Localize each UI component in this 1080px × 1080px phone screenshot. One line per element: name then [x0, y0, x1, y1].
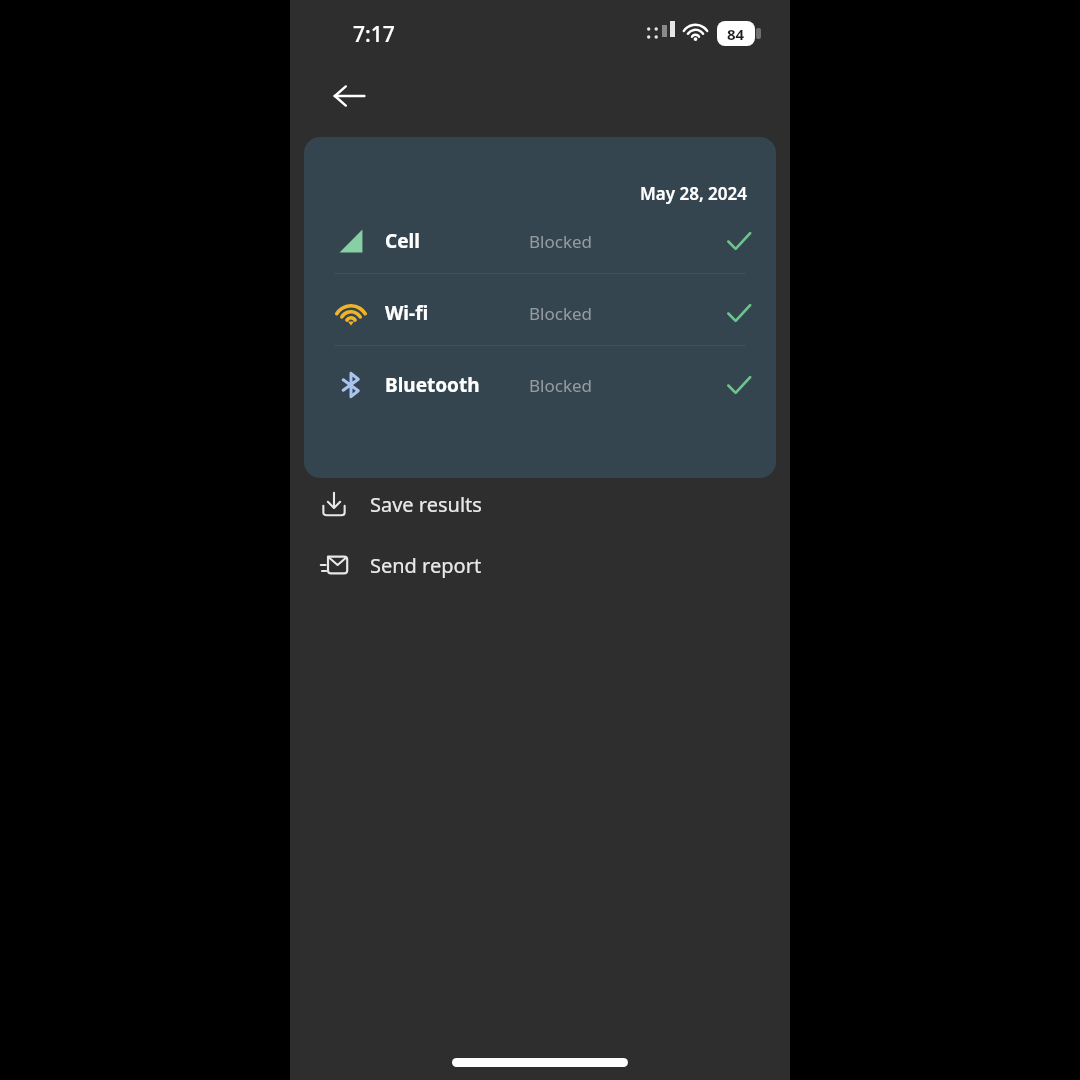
staticText: 84: [727, 24, 745, 44]
staticText: Bluetooth: [385, 372, 480, 398]
staticText: 7:17: [353, 20, 395, 49]
button[interactable]: Wi-fi: [304, 277, 776, 349]
button[interactable]: Back: [325, 72, 373, 120]
staticText: Blocked: [529, 230, 593, 253]
button[interactable]: Send report: [290, 539, 790, 591]
staticText: Blocked: [529, 374, 593, 397]
staticText: Send report: [370, 552, 482, 579]
staticText: Cell: [385, 228, 420, 254]
button[interactable]: Save results: [290, 478, 790, 530]
button[interactable]: Bluetooth: [304, 349, 776, 421]
staticText: Blocked: [529, 302, 593, 325]
staticText: Wi-fi: [385, 300, 429, 326]
staticText: Save results: [370, 491, 482, 518]
staticText: May 28, 2024: [304, 182, 747, 205]
button[interactable]: Cell: [304, 205, 776, 277]
